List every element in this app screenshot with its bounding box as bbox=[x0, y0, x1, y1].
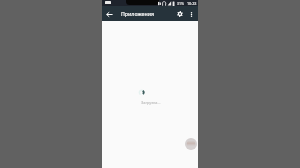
staticText: 10:23 bbox=[187, 1, 197, 6]
staticText: Приложения bbox=[121, 10, 154, 17]
button[interactable]: Back bbox=[102, 7, 116, 21]
button[interactable]: Settings bbox=[174, 8, 186, 20]
button[interactable]: More options bbox=[186, 9, 196, 19]
button[interactable]: Add bbox=[185, 138, 197, 150]
staticText: 31% bbox=[177, 1, 184, 6]
staticText: Загрузка... bbox=[141, 100, 161, 105]
